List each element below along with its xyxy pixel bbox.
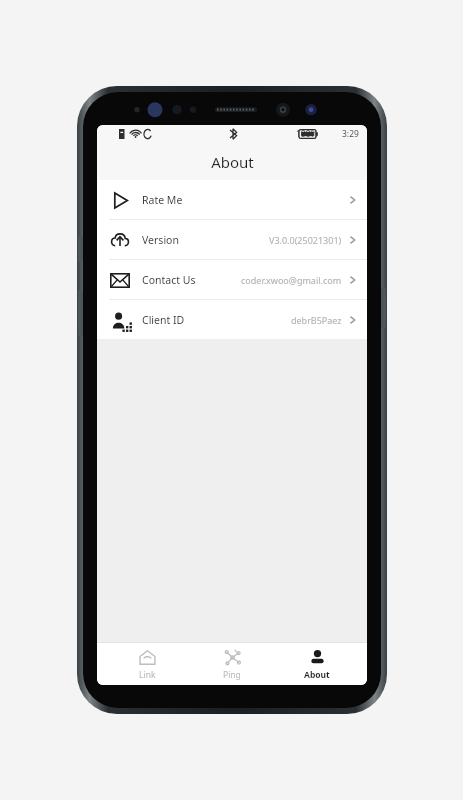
staticText: Rate Me xyxy=(142,193,183,207)
button[interactable]: Ping xyxy=(197,648,267,681)
other: Ping xyxy=(224,649,241,666)
staticText: About xyxy=(211,152,254,172)
button[interactable]: Contact Us xyxy=(97,260,367,300)
staticText: Version xyxy=(142,233,179,247)
button[interactable]: Client ID xyxy=(97,300,367,339)
button[interactable]: Rate Me xyxy=(97,180,367,220)
staticText: Link xyxy=(139,669,156,681)
staticText: V3.0.0(25021301) xyxy=(269,234,342,246)
other: Link xyxy=(139,649,156,666)
button[interactable]: Version xyxy=(97,220,367,260)
staticText: Contact Us xyxy=(142,273,196,287)
button[interactable]: About xyxy=(282,648,352,681)
staticText: 100% xyxy=(296,128,318,140)
staticText: debrB5Paez xyxy=(291,314,342,326)
staticText: Ping xyxy=(223,669,241,681)
button[interactable]: Link xyxy=(112,648,182,681)
staticText: Client ID xyxy=(142,313,185,327)
other: About xyxy=(309,649,326,666)
staticText: About xyxy=(304,669,330,681)
staticText: coder.xwoo@gmail.com xyxy=(241,274,342,286)
staticText: 3:29 xyxy=(342,128,359,140)
